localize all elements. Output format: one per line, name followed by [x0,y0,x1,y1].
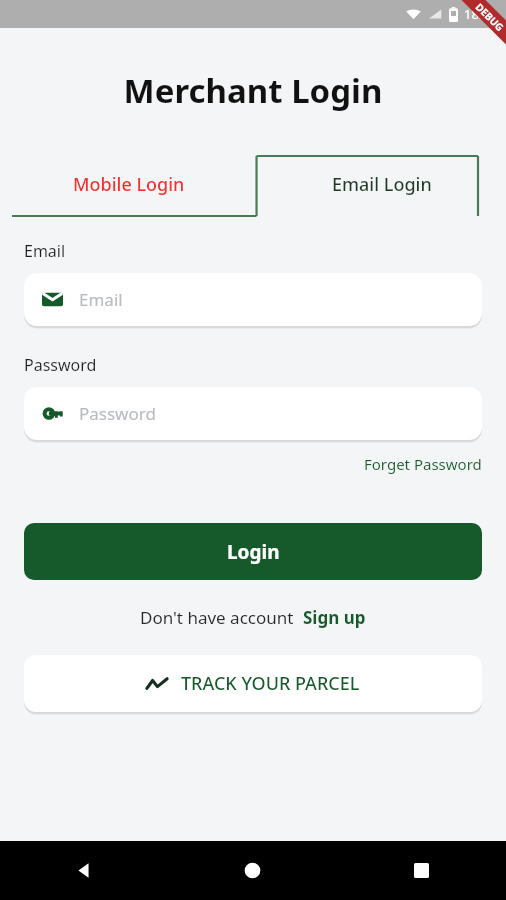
button[interactable]: Recent apps [337,841,506,900]
staticText: Mobile Login [73,172,185,197]
button[interactable]: Email [24,273,482,326]
button[interactable]: Mobile Login [0,150,257,218]
button[interactable]: Home [168,841,337,900]
staticText: Forget Password [364,454,482,474]
staticText: Email [79,288,123,311]
button[interactable]: Forget Password [364,452,506,476]
staticText: DEBUG [473,0,506,34]
staticText: 18:05 [464,5,498,23]
button[interactable]: Back [0,841,168,900]
staticText: Email [24,240,66,262]
button[interactable]: Login [24,523,482,580]
staticText: TRACK YOUR PARCEL [181,671,360,696]
staticText: Password [24,354,97,376]
button[interactable]: TRACK YOUR PARCEL [24,655,482,712]
staticText: Login [227,539,280,565]
button[interactable]: Email Login [257,150,506,218]
staticText: Merchant Login [0,68,506,113]
staticText: Email Login [332,172,432,197]
staticText: Sign up [303,606,366,629]
button[interactable]: Sign up [303,606,366,629]
button[interactable]: Password [24,387,482,440]
staticText: Don't have account [140,606,294,629]
staticText: Password [79,402,156,425]
